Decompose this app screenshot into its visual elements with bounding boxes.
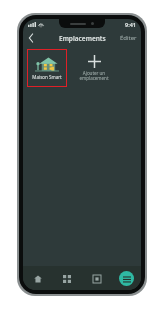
button[interactable]: Devices (59, 271, 74, 286)
button[interactable]: Home (30, 271, 45, 286)
button[interactable]: Automations (89, 271, 104, 286)
staticText: 9:41 (125, 21, 136, 28)
button[interactable]: Ajouter un emplacement (73, 49, 115, 87)
button[interactable]: Back (25, 32, 37, 44)
button[interactable]: Menu (119, 271, 134, 286)
staticText: Ajouter un emplacement (79, 70, 109, 82)
button[interactable]: Maison Smart (27, 49, 67, 87)
button[interactable]: Éditer (116, 32, 141, 44)
staticText: Éditer (120, 34, 137, 42)
staticText: Emplacements (59, 34, 106, 43)
staticText: Maison Smart (32, 74, 62, 80)
